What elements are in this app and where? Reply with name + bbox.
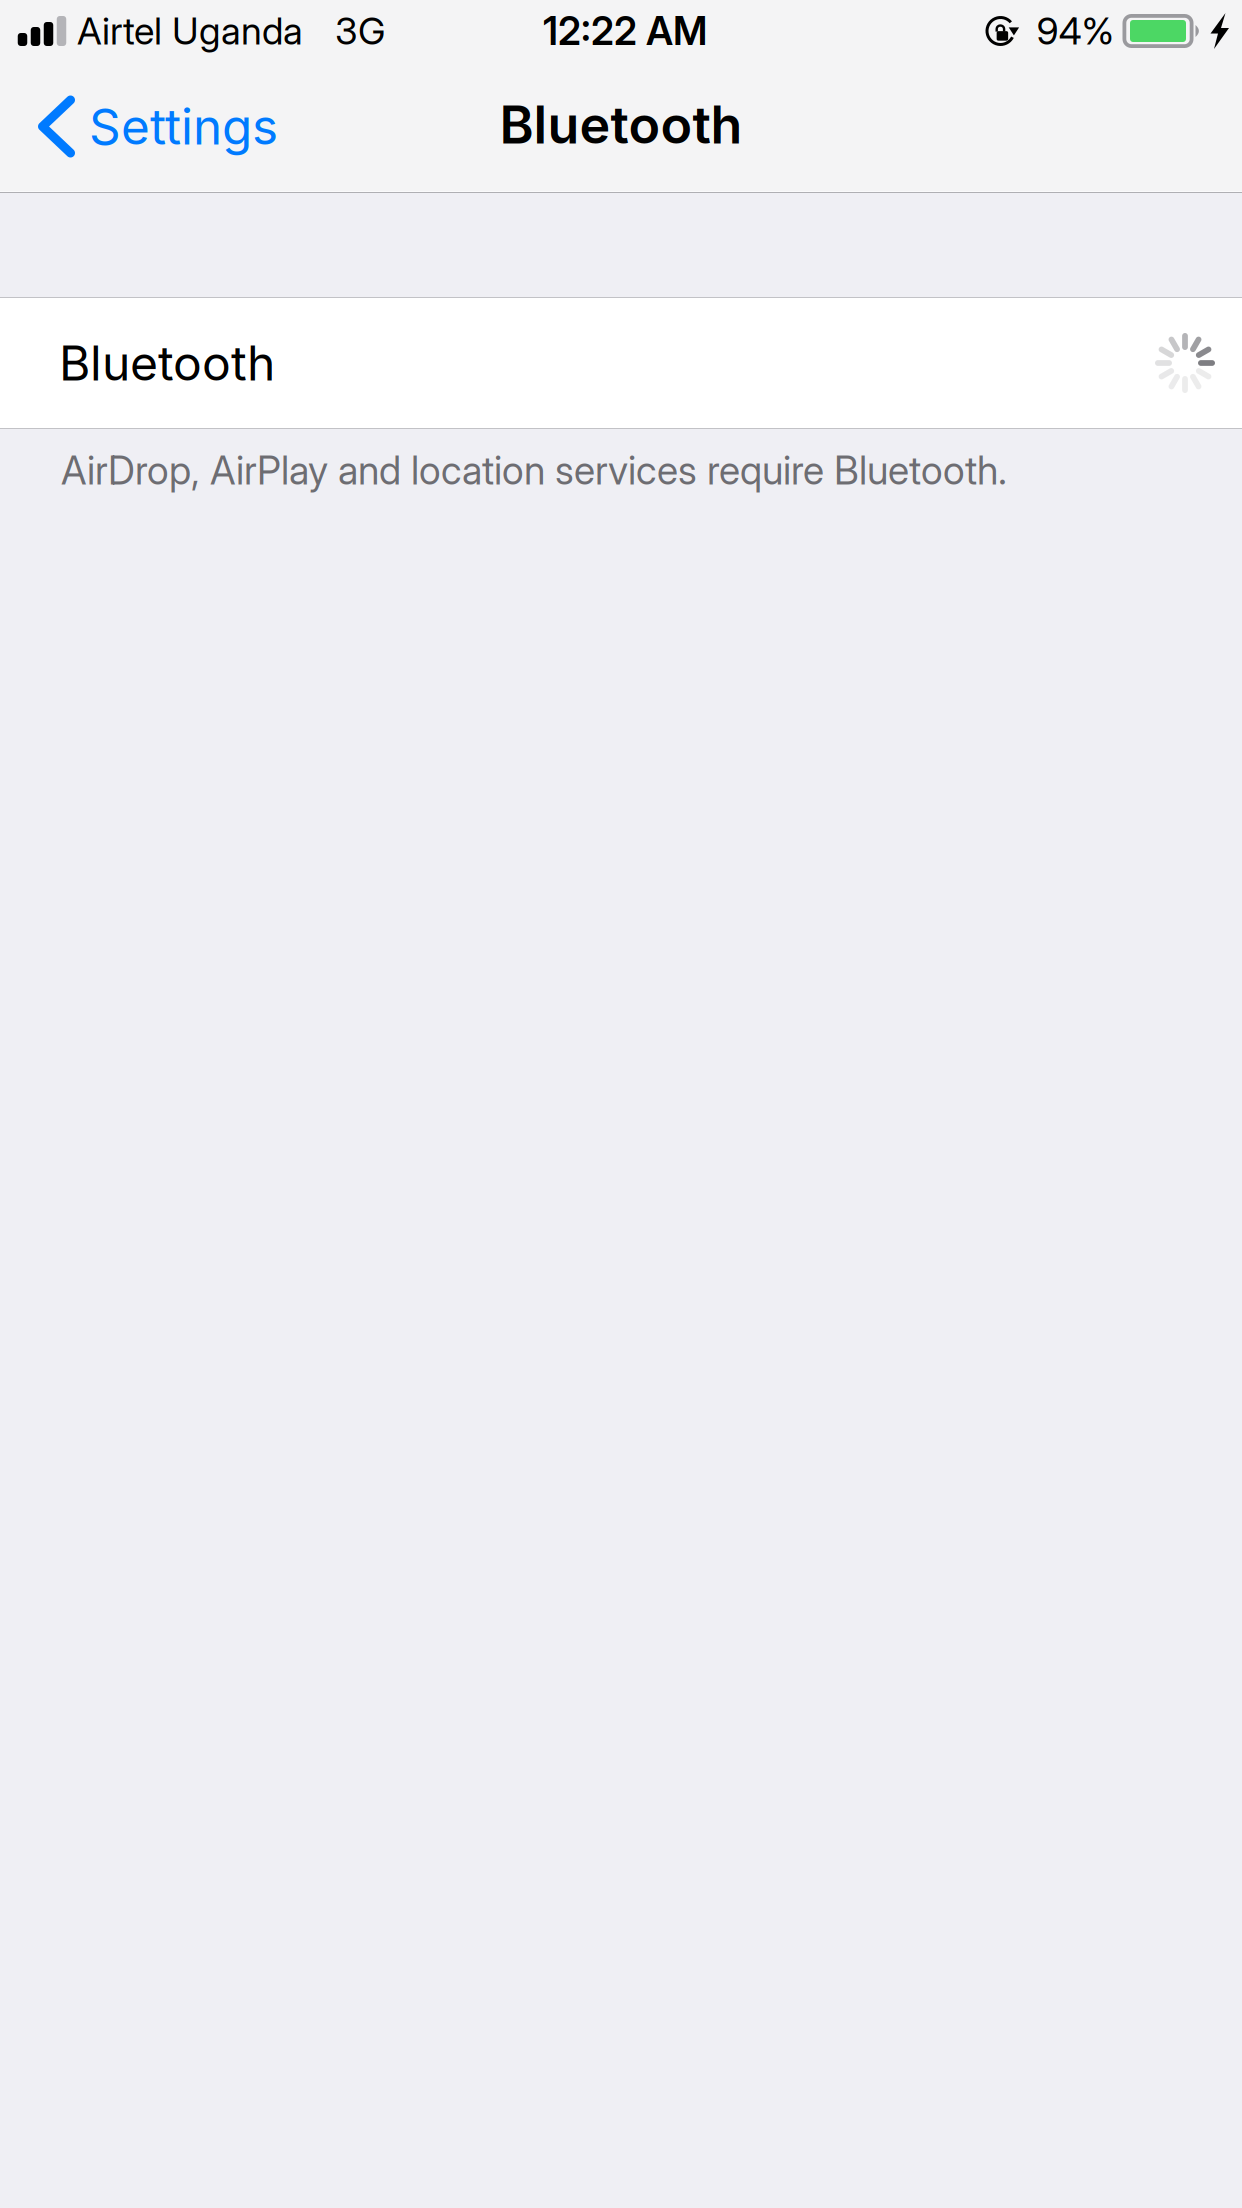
staticText: Airtel Uganda <box>77 8 303 54</box>
staticText: Settings <box>89 97 278 156</box>
button[interactable]: Settings <box>0 61 302 192</box>
button[interactable]: Bluetooth <box>0 298 1242 428</box>
staticText: 3G <box>335 8 385 54</box>
staticText: Bluetooth <box>59 334 275 392</box>
staticText: 12:22 AM <box>543 8 707 54</box>
staticText: Bluetooth <box>499 93 742 156</box>
staticText: 94% <box>1036 8 1114 54</box>
staticText: AirDrop, AirPlay and location services r… <box>61 447 1007 494</box>
